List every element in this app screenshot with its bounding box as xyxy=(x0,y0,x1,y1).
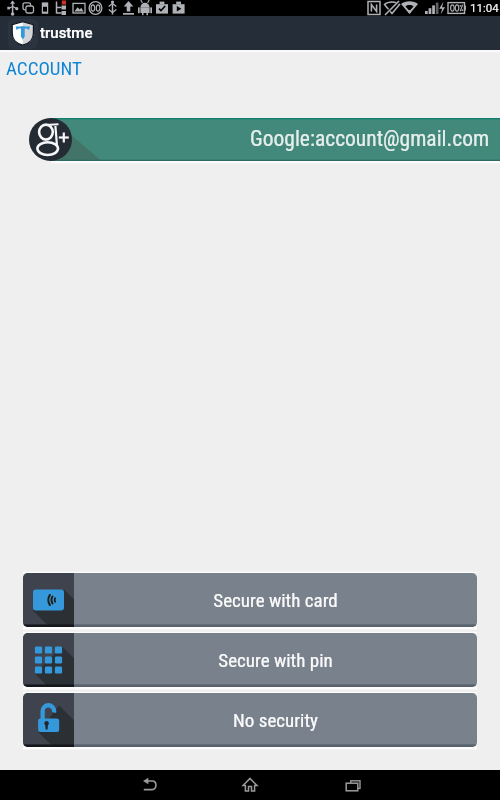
button[interactable]: Secure with pin xyxy=(23,633,477,687)
button[interactable]: No security xyxy=(23,693,477,747)
button[interactable]: Recent apps xyxy=(317,770,387,800)
button[interactable]: Google:account@gmail.com xyxy=(51,118,500,161)
staticText: 11:04 xyxy=(470,1,499,14)
button[interactable]: Back xyxy=(115,770,185,800)
button[interactable]: Secure with card xyxy=(23,573,477,627)
button[interactable]: App icon xyxy=(8,19,38,49)
staticText: No security xyxy=(233,709,318,731)
button[interactable]: Home xyxy=(215,770,285,800)
staticText: ACCOUNT xyxy=(6,57,82,79)
staticText: Secure with pin xyxy=(218,649,333,671)
button[interactable]: Google account xyxy=(29,118,72,161)
staticText: Google:account@gmail.com xyxy=(250,126,490,151)
staticText: Secure with card xyxy=(213,589,338,611)
staticText: trustme xyxy=(40,24,93,42)
